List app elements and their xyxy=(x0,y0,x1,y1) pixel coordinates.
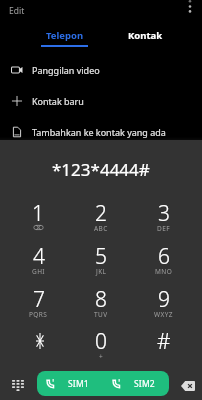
button[interactable]: Telepon xyxy=(26,26,102,48)
button[interactable]: 4 xyxy=(7,242,69,284)
staticText: MNO xyxy=(155,267,173,276)
staticText: 4 xyxy=(33,242,45,271)
button[interactable]: # xyxy=(132,327,195,369)
staticText: 1 xyxy=(32,199,44,228)
staticText: WXYZ xyxy=(154,310,173,319)
staticText: 0 xyxy=(95,327,107,356)
staticText: Telepon xyxy=(46,29,84,42)
staticText: *123*4444# xyxy=(52,158,150,181)
button[interactable]: 5 xyxy=(69,242,132,284)
staticText: Edit xyxy=(9,5,25,17)
staticText: JKL xyxy=(96,267,107,276)
button[interactable]: 3 xyxy=(132,199,195,241)
button[interactable]: Kontak baru xyxy=(0,89,202,113)
button[interactable]: Keypad xyxy=(5,373,30,398)
button[interactable]: SIM2 xyxy=(103,371,169,396)
staticText: SIM1 xyxy=(68,378,89,390)
staticText: Kontak baru xyxy=(32,95,84,107)
staticText: 9 xyxy=(158,285,170,314)
staticText: Panggilan video xyxy=(32,64,100,76)
staticText: 7 xyxy=(33,285,45,314)
button[interactable]: 7 xyxy=(7,285,69,327)
staticText: PQRS xyxy=(29,310,48,319)
button[interactable]: Tambahkan ke kontak yang ada xyxy=(0,120,202,144)
staticText: TUV xyxy=(94,310,108,319)
button[interactable]: 2 xyxy=(69,199,132,241)
button[interactable]: 8 xyxy=(69,285,132,327)
button[interactable]: Panggilan video xyxy=(0,58,202,82)
staticText: + xyxy=(99,352,104,361)
staticText: DEF xyxy=(157,224,170,233)
staticText: Kontak xyxy=(128,29,163,42)
staticText: SIM2 xyxy=(134,378,155,390)
staticText: 2 xyxy=(95,199,107,228)
staticText: 6 xyxy=(158,242,170,271)
staticText: 5 xyxy=(95,242,107,271)
staticText: GHI xyxy=(32,267,45,276)
staticText: 8 xyxy=(95,285,107,314)
button[interactable]: 6 xyxy=(132,242,195,284)
button[interactable] xyxy=(7,327,69,369)
staticText: ABC xyxy=(94,224,108,233)
button[interactable]: 0 xyxy=(69,327,132,369)
button[interactable]: Backspace xyxy=(175,373,200,398)
button[interactable]: More options xyxy=(182,0,198,16)
button[interactable]: SIM1 xyxy=(37,371,103,396)
staticText: Tambahkan ke kontak yang ada xyxy=(32,126,166,138)
button[interactable]: 9 xyxy=(132,285,195,327)
button[interactable]: Kontak xyxy=(107,26,183,48)
button[interactable]: Edit xyxy=(4,0,30,22)
button[interactable]: 1 xyxy=(7,199,69,241)
staticText: 3 xyxy=(158,199,170,228)
staticText: # xyxy=(157,327,171,356)
